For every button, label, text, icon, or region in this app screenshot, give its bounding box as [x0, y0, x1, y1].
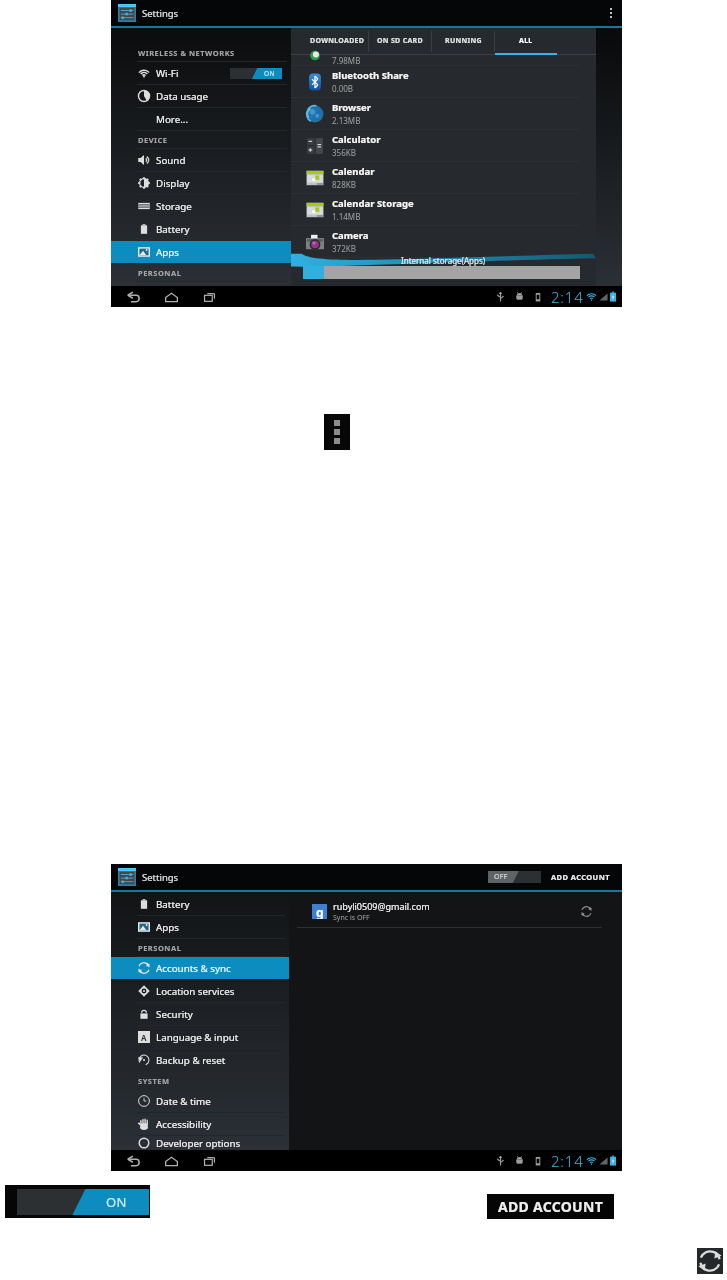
staticText: 372KB: [332, 243, 356, 254]
staticText: Camera: [332, 229, 369, 242]
staticText: Calculator: [332, 133, 381, 146]
button[interactable]: ADD ACCOUNT: [487, 1194, 614, 1219]
button[interactable]: Browser: [291, 98, 580, 130]
staticText: ON: [264, 69, 275, 78]
staticText: Settings: [142, 871, 179, 884]
staticText: Display: [156, 177, 190, 190]
button[interactable]: Apps: [111, 916, 289, 938]
staticText: Calendar: [332, 165, 375, 178]
button[interactable]: ALL: [495, 28, 557, 55]
button[interactable]: ON SD CARD: [369, 28, 431, 55]
staticText: ADD ACCOUNT: [551, 872, 610, 882]
staticText: 2.13MB: [332, 115, 361, 126]
staticText: Accounts & sync: [156, 962, 231, 975]
staticText: PERSONAL: [138, 268, 182, 278]
button[interactable]: Sync: [697, 1248, 723, 1274]
button[interactable]: Security: [111, 1003, 289, 1025]
button[interactable]: Recents: [201, 289, 217, 305]
button[interactable]: Accounts & sync: [111, 957, 289, 979]
button[interactable]: More options: [324, 414, 350, 450]
staticText: Language & input: [156, 1031, 239, 1044]
staticText: g: [316, 904, 324, 919]
button[interactable]: Storage: [111, 195, 291, 217]
staticText: SYSTEM: [138, 1076, 170, 1086]
button[interactable]: DOWNLOADED: [306, 28, 368, 55]
staticText: RUNNING: [445, 36, 482, 46]
staticText: DOWNLOADED: [310, 36, 365, 46]
button[interactable]: Battery: [111, 218, 291, 240]
button[interactable]: Apps: [111, 241, 291, 263]
staticText: 1.14MB: [332, 211, 361, 222]
button[interactable]: Location services: [111, 980, 289, 1002]
button[interactable]: Calculator: [291, 130, 580, 162]
staticText: PERSONAL: [138, 943, 182, 953]
staticText: Apps: [156, 921, 180, 934]
button[interactable]: g: [289, 896, 606, 927]
staticText: 356KB: [332, 147, 356, 158]
button[interactable]: A: [111, 1026, 289, 1048]
button[interactable]: Calendar Storage: [291, 194, 580, 226]
button[interactable]: Display: [111, 172, 291, 194]
staticText: Bluetooth Share: [332, 69, 409, 82]
button[interactable]: Camera: [291, 226, 580, 258]
button[interactable]: Data usage: [111, 85, 291, 107]
staticText: WIRELESS & NETWORKS: [138, 48, 235, 58]
staticText: Developer options: [156, 1137, 241, 1150]
staticText: Calendar Storage: [332, 197, 414, 210]
staticText: 0.00B: [332, 83, 354, 94]
staticText: 828KB: [332, 179, 356, 190]
staticText: 2:14: [551, 1151, 584, 1171]
button[interactable]: Home: [163, 1153, 179, 1169]
staticText: rubyli0509@gmail.com: [333, 900, 430, 912]
staticText: Wi-Fi: [156, 67, 179, 80]
button[interactable]: Back: [125, 1153, 141, 1169]
staticText: ALL: [519, 36, 533, 46]
staticText: 7.98MB: [332, 55, 361, 65]
button[interactable]: RUNNING: [432, 28, 494, 55]
button[interactable]: Home: [163, 289, 179, 305]
staticText: More...: [156, 113, 189, 126]
staticText: Security: [156, 1008, 193, 1021]
staticText: Browser: [332, 101, 371, 114]
staticText: Internal storage(Apps): [401, 255, 486, 266]
staticText: Date & time: [156, 1095, 211, 1108]
staticText: Sound: [156, 154, 186, 167]
staticText: Storage: [156, 200, 192, 213]
button[interactable]: Recents: [201, 1153, 217, 1169]
staticText: ADD ACCOUNT: [498, 1197, 604, 1216]
button[interactable]: Bluetooth Share: [291, 66, 580, 98]
button[interactable]: Backup & reset: [111, 1049, 289, 1071]
staticText: Accessibility: [156, 1118, 212, 1131]
button[interactable]: Accessibility: [111, 1113, 289, 1135]
staticText: DEVICE: [138, 135, 168, 145]
button[interactable]: ADD ACCOUNT: [541, 864, 620, 890]
staticText: ON SD CARD: [377, 36, 423, 46]
staticText: Location services: [156, 985, 235, 998]
staticText: OFF: [494, 872, 508, 882]
staticText: Settings: [142, 7, 179, 20]
button[interactable]: Back: [125, 289, 141, 305]
staticText: Battery: [156, 898, 190, 911]
button[interactable]: Battery: [111, 893, 289, 915]
button[interactable]: Calendar: [291, 162, 580, 194]
button[interactable]: Date & time: [111, 1090, 289, 1112]
staticText: Apps: [156, 246, 180, 259]
staticText: A: [141, 1032, 147, 1043]
staticText: Backup & reset: [156, 1054, 226, 1067]
button[interactable]: Wi-Fi: [111, 62, 291, 84]
staticText: Data usage: [156, 90, 209, 103]
button[interactable]: More options: [600, 0, 622, 26]
staticText: Battery: [156, 223, 190, 236]
button[interactable]: More...: [111, 108, 291, 130]
staticText: 2:14: [551, 287, 584, 307]
staticText: Sync is OFF: [333, 913, 370, 923]
staticText: ON: [106, 1193, 127, 1211]
button[interactable]: Sound: [111, 149, 291, 171]
button[interactable]: Developer options: [111, 1136, 289, 1150]
